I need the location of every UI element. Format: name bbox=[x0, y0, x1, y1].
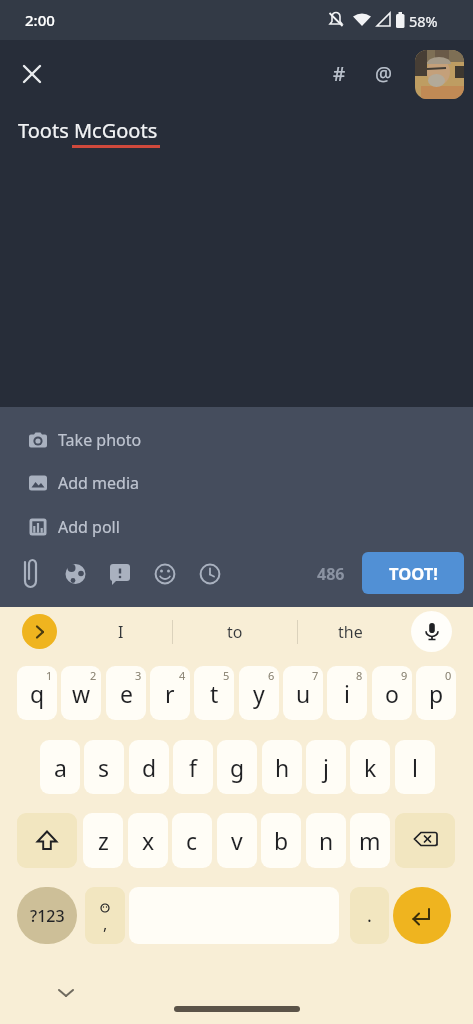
staticText: m bbox=[359, 825, 381, 856]
button[interactable] bbox=[22, 614, 57, 649]
button[interactable]: ?123 bbox=[17, 887, 77, 944]
staticText: x bbox=[142, 825, 155, 856]
button[interactable]: Add poll bbox=[0, 507, 473, 547]
staticText: Add poll bbox=[58, 516, 120, 538]
button[interactable] bbox=[10, 52, 54, 96]
staticText: Toots McGoots bbox=[18, 117, 158, 144]
button[interactable]: l bbox=[395, 740, 435, 794]
button[interactable]: x bbox=[128, 813, 168, 868]
button[interactable]: Add media bbox=[0, 463, 473, 503]
button[interactable]: s bbox=[84, 740, 124, 794]
staticText: n bbox=[319, 825, 334, 856]
button[interactable]: TOOT! bbox=[362, 552, 464, 594]
staticText: 6 bbox=[268, 668, 275, 683]
button[interactable]: y bbox=[239, 666, 279, 720]
button[interactable]: p bbox=[416, 666, 456, 720]
staticText: 1 bbox=[46, 668, 53, 683]
staticText: y bbox=[253, 678, 265, 709]
button[interactable]: . bbox=[350, 887, 389, 944]
button[interactable]: k bbox=[350, 740, 390, 794]
staticText: e bbox=[120, 678, 133, 709]
button[interactable]: b bbox=[261, 813, 301, 868]
staticText: 0 bbox=[445, 668, 452, 683]
button[interactable]: m bbox=[350, 813, 390, 868]
staticText: 486 bbox=[317, 563, 345, 585]
staticText: r bbox=[165, 678, 175, 709]
staticText: # bbox=[333, 61, 346, 87]
staticText: g bbox=[230, 752, 245, 783]
staticText: p bbox=[429, 678, 444, 709]
staticText: v bbox=[231, 825, 243, 856]
staticText: . bbox=[367, 903, 372, 928]
staticText: @ bbox=[375, 61, 393, 87]
button[interactable]: the bbox=[298, 614, 402, 650]
button[interactable]: n bbox=[306, 813, 346, 868]
staticText: ?123 bbox=[30, 905, 65, 927]
staticText: t bbox=[210, 678, 219, 709]
staticText: c bbox=[186, 825, 198, 856]
button[interactable]: j bbox=[306, 740, 346, 794]
staticText: u bbox=[296, 678, 311, 709]
button[interactable] bbox=[415, 50, 464, 99]
button[interactable] bbox=[411, 611, 452, 652]
staticText: w bbox=[72, 678, 91, 709]
button[interactable]: e bbox=[106, 666, 146, 720]
staticText: 5 bbox=[223, 668, 230, 683]
staticText: b bbox=[274, 825, 289, 856]
staticText: h bbox=[275, 752, 290, 783]
button[interactable]: @ bbox=[364, 54, 404, 94]
staticText: s bbox=[98, 752, 110, 783]
button[interactable]: u bbox=[283, 666, 323, 720]
button[interactable]: z bbox=[83, 813, 123, 868]
button[interactable]: q bbox=[17, 666, 57, 720]
button[interactable]: t bbox=[194, 666, 234, 720]
button[interactable]: h bbox=[262, 740, 302, 794]
button[interactable]: d bbox=[129, 740, 169, 794]
button[interactable] bbox=[395, 813, 455, 868]
staticText: the bbox=[338, 621, 363, 643]
staticText: 3 bbox=[135, 668, 142, 683]
button[interactable]: c bbox=[172, 813, 212, 868]
staticText: z bbox=[98, 825, 109, 856]
staticText: o bbox=[385, 678, 399, 709]
staticText: a bbox=[54, 752, 67, 783]
button[interactable]: i bbox=[327, 666, 367, 720]
staticText: 9 bbox=[401, 668, 408, 683]
staticText: 58% bbox=[409, 11, 438, 31]
button[interactable]: g bbox=[217, 740, 257, 794]
staticText: 2:00 bbox=[25, 10, 55, 30]
staticText: j bbox=[323, 752, 329, 783]
staticText: 4 bbox=[179, 668, 186, 683]
button[interactable]: to bbox=[173, 614, 297, 650]
button[interactable]: , bbox=[85, 887, 125, 944]
staticText: TOOT! bbox=[389, 562, 438, 584]
staticText: 7 bbox=[312, 668, 319, 683]
button[interactable]: r bbox=[150, 666, 190, 720]
staticText: 2 bbox=[90, 668, 97, 683]
staticText: 8 bbox=[356, 668, 363, 683]
staticText: Add media bbox=[58, 472, 139, 494]
staticText: d bbox=[142, 752, 157, 783]
button[interactable]: # bbox=[320, 54, 358, 94]
staticText: l bbox=[412, 752, 418, 783]
button[interactable]: f bbox=[173, 740, 213, 794]
button[interactable]: I bbox=[70, 614, 172, 650]
staticText: Take photo bbox=[58, 429, 142, 451]
staticText: f bbox=[189, 752, 197, 783]
button[interactable] bbox=[393, 887, 451, 944]
button[interactable]: w bbox=[61, 666, 101, 720]
staticText: I bbox=[118, 621, 124, 643]
staticText: , bbox=[103, 913, 108, 935]
button[interactable]: o bbox=[372, 666, 412, 720]
button[interactable] bbox=[17, 813, 77, 868]
staticText: i bbox=[344, 678, 350, 709]
staticText: k bbox=[364, 752, 377, 783]
staticText: q bbox=[30, 678, 45, 709]
staticText: to bbox=[227, 621, 243, 643]
button[interactable]: v bbox=[217, 813, 257, 868]
button[interactable]: Take photo bbox=[0, 420, 473, 460]
button[interactable]: a bbox=[40, 740, 80, 794]
